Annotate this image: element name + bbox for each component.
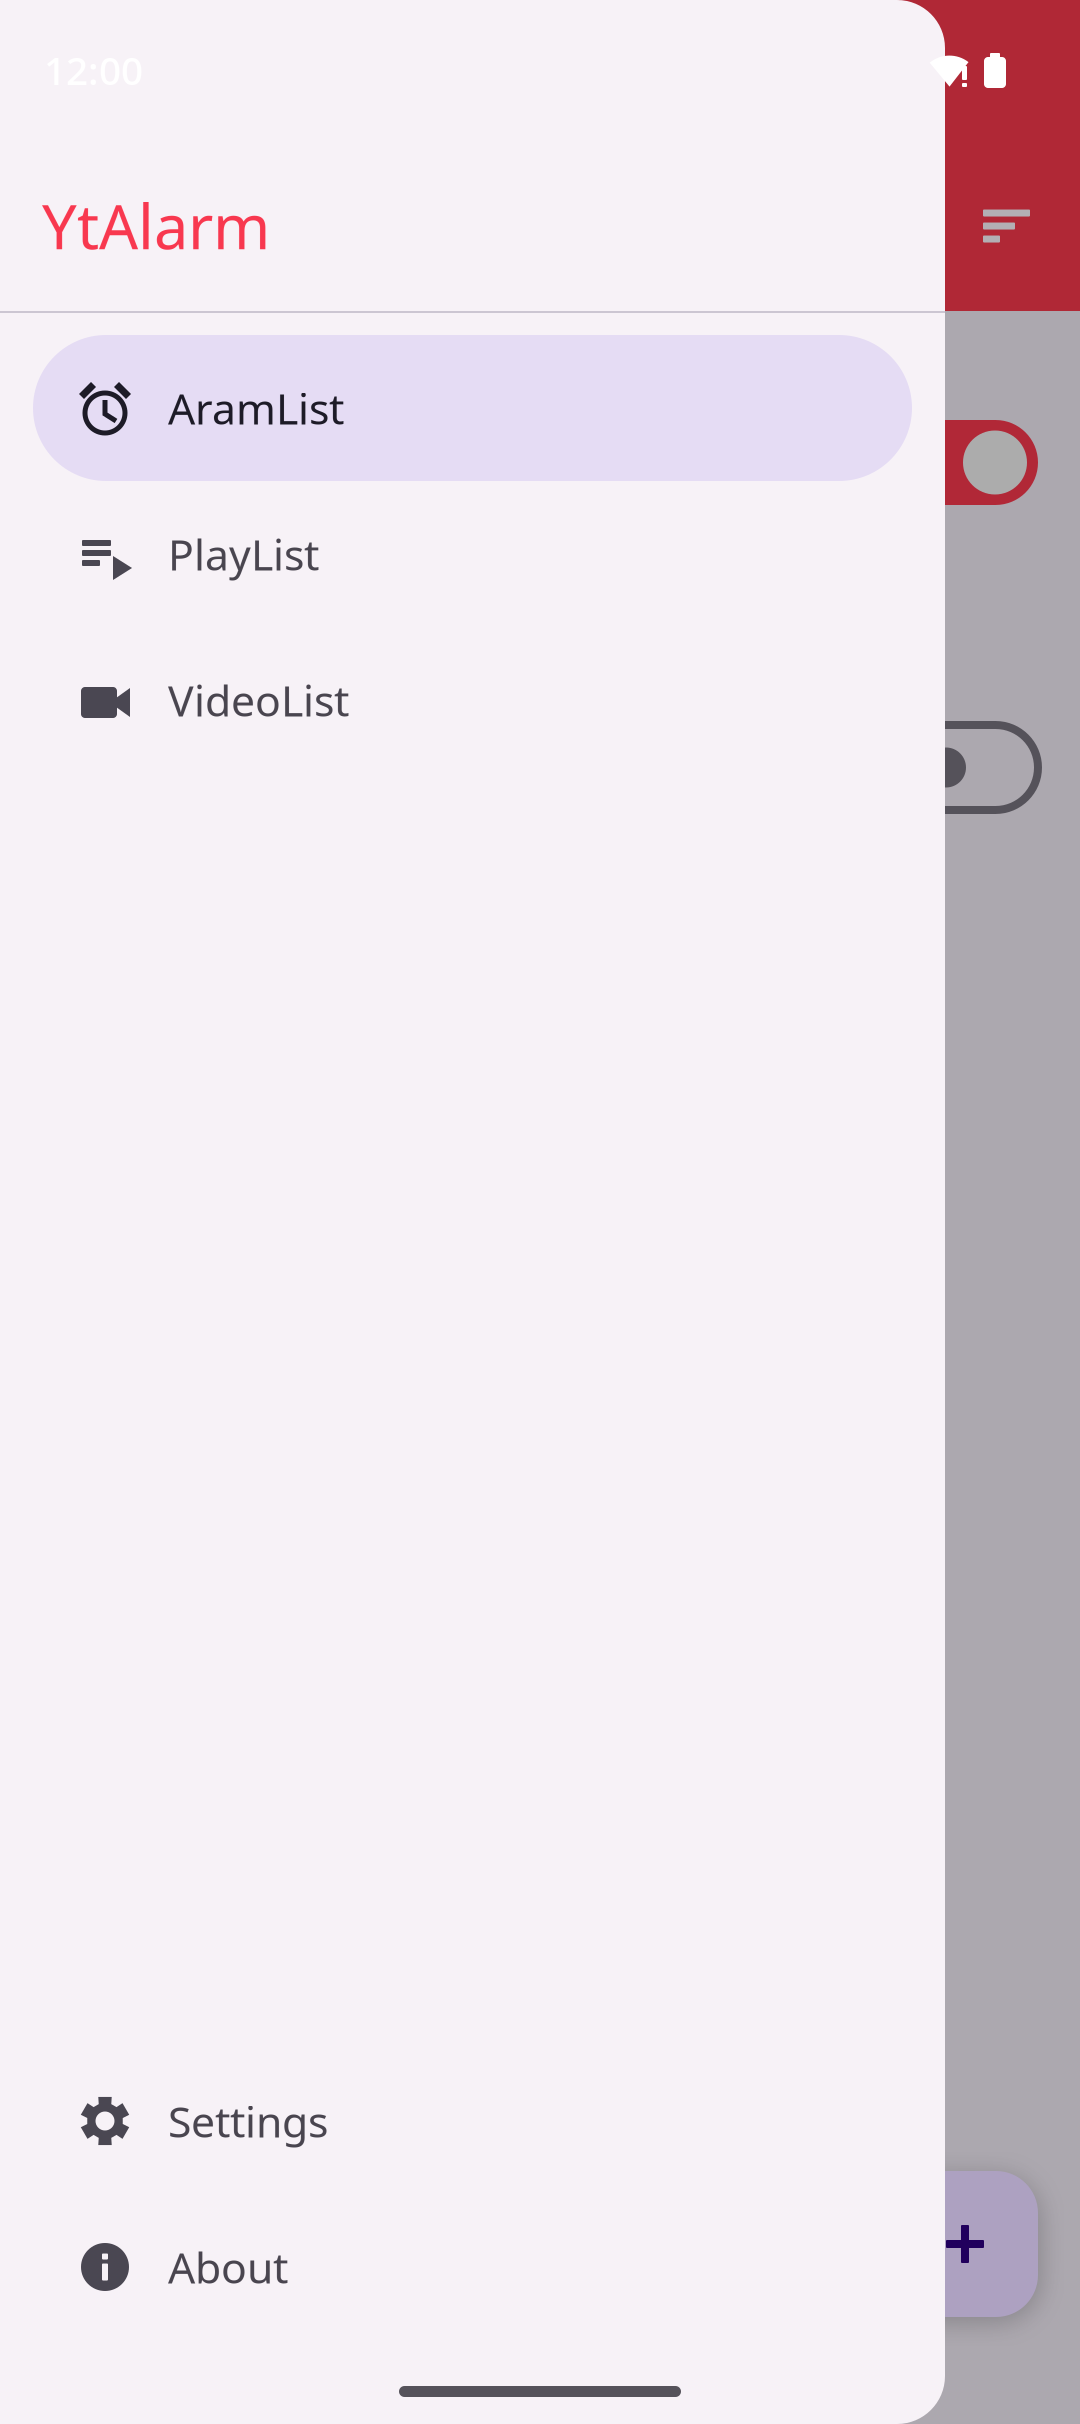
button[interactable]: PlayList <box>0 481 945 627</box>
button[interactable]: Alarm on <box>886 420 1038 505</box>
button[interactable]: AramList <box>0 335 945 481</box>
button[interactable]: Sort <box>983 190 1055 262</box>
staticText: 12:00 <box>44 44 143 96</box>
staticText: VideoList <box>168 672 349 728</box>
staticText: YtAlarm <box>42 185 270 266</box>
staticText: About <box>168 2239 288 2295</box>
button[interactable]: Settings <box>0 2048 945 2194</box>
button[interactable]: VideoList <box>0 627 945 773</box>
button[interactable]: About <box>0 2194 945 2340</box>
staticText: PlayList <box>168 526 319 582</box>
staticText: Settings <box>168 2093 328 2149</box>
button[interactable]: Alarm off <box>886 725 1038 810</box>
staticText: AramList <box>168 380 344 436</box>
button[interactable]: Add <box>892 2171 1038 2317</box>
